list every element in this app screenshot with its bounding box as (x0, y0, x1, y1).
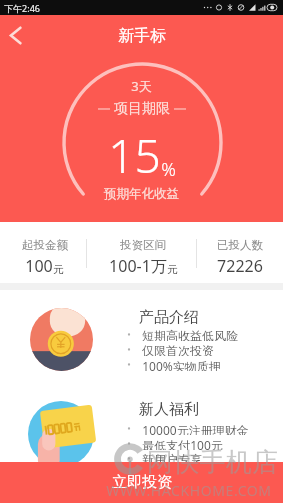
staticText: 100 (25, 255, 53, 277)
staticText: 投资区间 (120, 238, 166, 252)
staticText: 15 (108, 124, 161, 187)
button[interactable]: 已投人数 (197, 222, 283, 283)
staticText: 预期年化收益 (104, 186, 179, 202)
staticText: 新人福利 (139, 400, 199, 419)
staticText: 下午2:46 (4, 2, 40, 14)
staticText: 短期高收益低风险 (142, 328, 238, 341)
button[interactable]: 新人福利 (0, 381, 283, 467)
staticText: 仅限首次投资 (142, 343, 214, 356)
staticText: 网快手机店 (147, 446, 278, 479)
staticText: WWW.HACKHOME.COM (106, 481, 272, 500)
staticText: 元 (167, 263, 178, 276)
staticText: 100-1万 (109, 255, 167, 277)
staticText: 新手标 (118, 26, 166, 46)
staticText: 已投人数 (217, 238, 263, 252)
staticText: 立即投资 (112, 473, 172, 492)
button[interactable]: 立即投资 (0, 462, 283, 503)
staticText: % (161, 157, 176, 182)
staticText: 产品介绍 (139, 308, 199, 327)
staticText: 10000元注册理财金 (142, 422, 249, 435)
button[interactable]: 起投金额 (0, 222, 89, 283)
button[interactable]: 产品介绍 (0, 290, 283, 376)
staticText: 新用户专享 (142, 452, 202, 465)
staticText: 72226 (217, 255, 263, 277)
staticText: 起投金额 (22, 238, 68, 252)
button[interactable]: Back (0, 20, 30, 50)
staticText: 项目期限 (114, 100, 170, 118)
staticText: 100%实物质押 (142, 358, 221, 371)
staticText: 3天 (131, 77, 152, 95)
button[interactable]: 投资区间 (89, 222, 197, 283)
staticText: 最低支付100元 (142, 437, 223, 450)
staticText: 元 (53, 263, 64, 276)
